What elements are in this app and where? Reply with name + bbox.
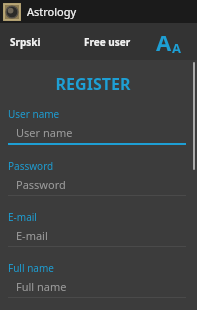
staticText: Srpski	[10, 35, 41, 49]
staticText: User name	[16, 125, 73, 140]
button[interactable]: Free user	[78, 29, 137, 55]
staticText: Password	[16, 177, 66, 192]
staticText: Password	[8, 159, 54, 173]
button[interactable]: Password	[8, 177, 186, 196]
button[interactable]: User name	[8, 125, 186, 145]
button[interactable]: Astrology	[0, 0, 197, 23]
button[interactable]: E-mail	[8, 228, 186, 247]
button[interactable]: Srpski	[4, 29, 47, 55]
staticText: A	[156, 27, 172, 57]
staticText: REGISTER	[0, 73, 186, 95]
staticText: Full name	[8, 261, 54, 275]
button[interactable]: Full name	[8, 279, 186, 298]
staticText: E-mail	[8, 210, 37, 224]
staticText: Full name	[16, 279, 67, 294]
button[interactable]: Change text size	[154, 25, 183, 59]
staticText: E-mail	[16, 228, 48, 243]
staticText: A	[172, 39, 181, 57]
staticText: User name	[8, 107, 60, 121]
staticText: Astrology	[27, 4, 77, 19]
staticText: Free user	[84, 35, 131, 49]
